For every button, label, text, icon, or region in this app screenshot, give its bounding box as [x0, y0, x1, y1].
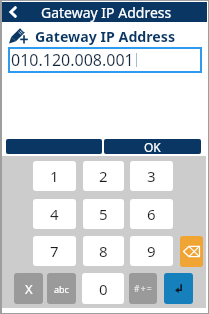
button[interactable]: 010.120.008.001	[8, 47, 202, 73]
staticText: 5	[99, 204, 108, 224]
button[interactable]: abc	[47, 273, 76, 304]
staticText: 9	[147, 241, 156, 261]
button[interactable]: Back	[2, 2, 23, 22]
staticText: 6	[147, 204, 156, 224]
button[interactable]: 1	[33, 161, 76, 191]
staticText: 1	[50, 166, 59, 186]
button[interactable]: 2	[83, 161, 124, 191]
button[interactable]: 7	[33, 236, 76, 266]
staticText: 010.120.008.001	[11, 49, 134, 71]
staticText: 2	[99, 166, 108, 186]
button[interactable]: Enter	[164, 273, 193, 304]
staticText: OK	[144, 139, 161, 154]
staticText: 3	[147, 166, 156, 186]
button[interactable]: X	[14, 273, 43, 304]
button[interactable]: #+=	[129, 273, 157, 304]
staticText: 8	[99, 241, 108, 261]
button[interactable]: 9	[130, 236, 173, 266]
button[interactable]: 4	[33, 199, 76, 229]
button[interactable]: Backspace	[180, 236, 203, 267]
button[interactable]: 8	[83, 236, 124, 266]
button[interactable]: 6	[130, 199, 173, 229]
staticText: #+=	[134, 283, 153, 295]
button[interactable]: OK	[104, 139, 201, 154]
staticText: abc	[54, 283, 69, 295]
staticText: X	[25, 280, 33, 298]
button[interactable]: 5	[83, 199, 124, 229]
staticText: Gateway IP Address	[35, 27, 176, 46]
staticText: 0	[99, 279, 108, 299]
button[interactable]: Edit	[9, 27, 28, 44]
staticText: 7	[50, 241, 59, 261]
button[interactable]: 0	[82, 273, 124, 304]
staticText: 4	[50, 204, 59, 224]
staticText: Gateway IP Address	[41, 3, 172, 22]
button[interactable]: 3	[130, 161, 173, 191]
button[interactable]: Cancel	[6, 139, 102, 154]
